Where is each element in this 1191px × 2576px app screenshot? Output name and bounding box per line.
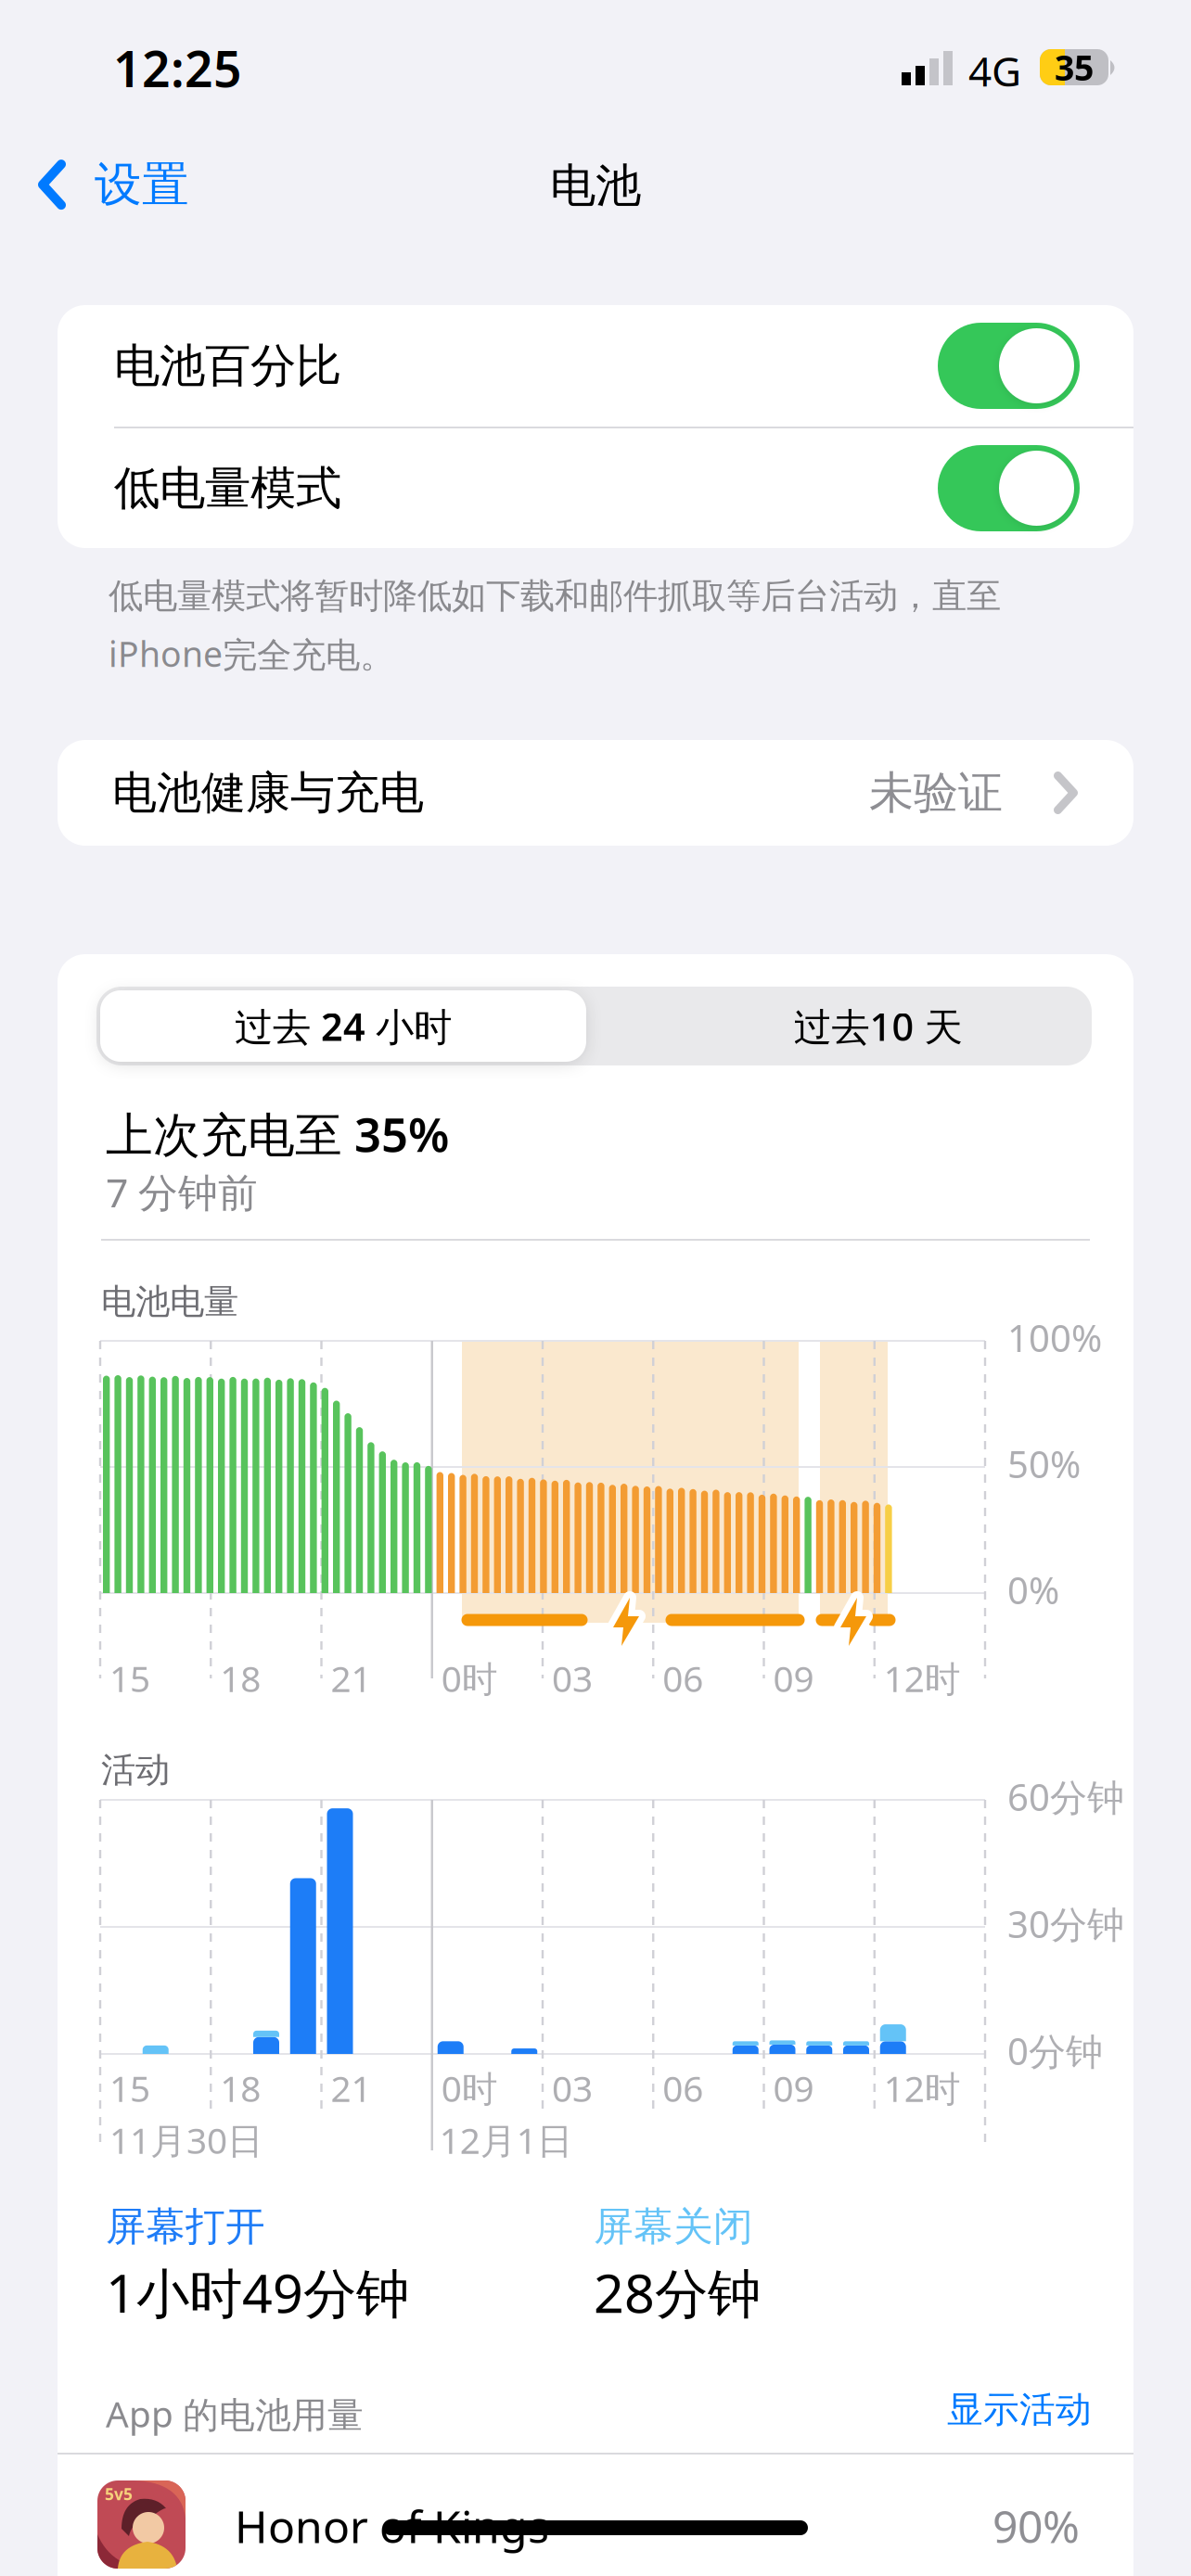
staticText: 设置 xyxy=(95,156,189,213)
staticText: 4G xyxy=(968,44,1021,98)
staticText: 过去 24 小时 xyxy=(235,1001,452,1052)
staticText: 06 xyxy=(662,1654,703,1702)
staticText: 09 xyxy=(773,2064,814,2112)
staticText: Honor of Kings xyxy=(235,2496,549,2555)
staticText: 显示活动 xyxy=(947,2388,1092,2432)
staticText: 12:25 xyxy=(113,35,242,101)
button[interactable]: 5v5 xyxy=(58,2466,1133,2576)
staticText: 0时 xyxy=(441,2064,498,2112)
staticText: 过去10 天 xyxy=(794,1001,962,1052)
staticText: 屏幕打开 xyxy=(106,2202,265,2251)
staticText: 5v5 xyxy=(105,2483,133,2505)
staticText: 50% xyxy=(1007,1439,1081,1488)
staticText: 30分钟 xyxy=(1007,1899,1124,1948)
button[interactable]: 过去10 天 xyxy=(96,987,602,1065)
staticText: 12月1日 xyxy=(439,2116,573,2164)
staticText: 18 xyxy=(220,1654,261,1702)
staticText: 未验证 xyxy=(869,765,1003,820)
staticText: 28分钟 xyxy=(594,2257,761,2328)
staticText: iPhone完全充电。 xyxy=(109,630,394,677)
staticText: 90% xyxy=(992,2496,1080,2555)
staticText: 100% xyxy=(1007,1313,1102,1362)
staticText: 12时 xyxy=(884,2064,961,2112)
staticText: 0时 xyxy=(441,1654,498,1702)
staticText: 0% xyxy=(1007,1565,1059,1614)
staticText: 活动 xyxy=(101,1749,170,1791)
staticText: 11月30日 xyxy=(109,2116,263,2164)
staticText: 03 xyxy=(552,1654,593,1702)
staticText: 上次充电至 35% xyxy=(106,1103,449,1165)
staticText: 21 xyxy=(331,1654,371,1702)
staticText: 低电量模式 xyxy=(114,460,341,516)
staticText: 15 xyxy=(109,2064,150,2112)
staticText: 7 分钟前 xyxy=(106,1166,258,1218)
staticText: 屏幕关闭 xyxy=(594,2202,753,2251)
staticText: 60分钟 xyxy=(1007,1772,1124,1821)
staticText: 电池健康与充电 xyxy=(112,765,424,820)
button[interactable]: 过去 24 小时 xyxy=(96,987,583,1058)
staticText: 18 xyxy=(220,2064,261,2112)
button[interactable]: 设置 xyxy=(37,156,189,213)
staticText: 06 xyxy=(662,2064,703,2112)
staticText: 电池电量 xyxy=(101,1281,238,1323)
staticText: 电池百分比 xyxy=(114,338,341,394)
staticText: 0分钟 xyxy=(1007,2026,1103,2075)
staticText: 15 xyxy=(109,1654,150,1702)
button[interactable]: 电池百分比 xyxy=(58,305,1133,427)
staticText: 低电量模式将暂时降低如下载和邮件抓取等后台活动，直至 xyxy=(109,575,1001,617)
button[interactable]: 电池健康与充电 xyxy=(58,740,1133,846)
staticText: 09 xyxy=(773,1654,814,1702)
staticText: 1小时49分钟 xyxy=(106,2257,409,2328)
staticText: 21 xyxy=(331,2064,371,2112)
staticText: 35 xyxy=(1055,44,1094,90)
staticText: 12时 xyxy=(884,1654,961,1702)
staticText: 电池 xyxy=(550,158,641,214)
staticText: App 的电池用量 xyxy=(106,2390,364,2437)
staticText: 03 xyxy=(552,2064,593,2112)
button[interactable]: 低电量模式 xyxy=(58,428,1133,548)
button[interactable]: 显示活动 xyxy=(58,954,429,998)
